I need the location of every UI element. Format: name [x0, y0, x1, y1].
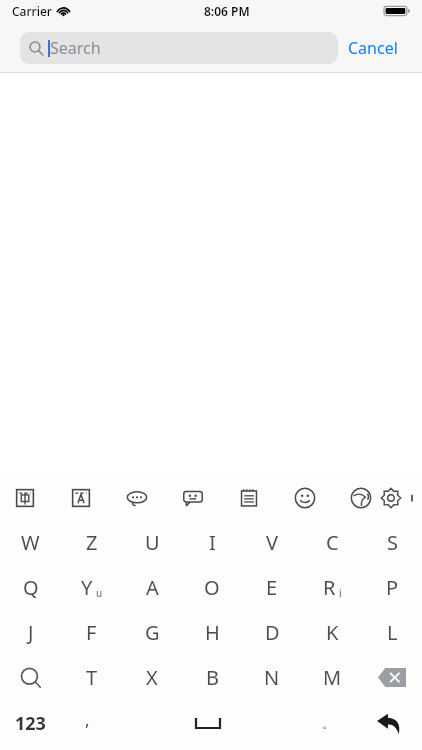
button[interactable]: D	[242, 610, 302, 655]
button[interactable]: Q	[0, 565, 61, 610]
staticText: S	[387, 529, 398, 556]
button[interactable]: Emoji	[290, 483, 320, 513]
button[interactable]: K	[302, 610, 362, 655]
staticText: J	[28, 619, 34, 646]
button[interactable]: X	[122, 655, 182, 700]
staticText: F	[86, 619, 97, 646]
button[interactable]: P	[362, 565, 422, 610]
button[interactable]: S	[362, 520, 422, 565]
staticText: 8:06 PM	[204, 3, 250, 19]
staticText: R	[323, 574, 336, 601]
staticText: Y	[81, 574, 93, 601]
staticText: X	[146, 664, 158, 691]
button[interactable]: Cancel	[338, 31, 408, 65]
staticText: Cancel	[348, 37, 398, 59]
staticText: Search	[50, 37, 101, 59]
staticText: 。	[322, 715, 335, 731]
staticText: N	[264, 664, 280, 691]
staticText: T	[86, 664, 98, 691]
staticText: P	[386, 574, 399, 601]
staticText: L	[387, 619, 398, 646]
staticText: I	[209, 529, 216, 556]
button[interactable]: C	[302, 520, 362, 565]
staticText: D	[265, 619, 280, 646]
button[interactable]: W	[0, 520, 61, 565]
staticText: V	[266, 529, 278, 556]
staticText: G	[145, 619, 160, 646]
button[interactable]: Emoticons	[178, 483, 208, 513]
button[interactable]: L	[362, 610, 422, 655]
button[interactable]: J	[0, 610, 61, 655]
button[interactable]: Space	[115, 700, 301, 746]
button[interactable]: Settings	[376, 483, 406, 513]
button[interactable]: E	[242, 565, 302, 610]
button[interactable]: Chinese input	[10, 483, 40, 513]
button[interactable]: V	[242, 520, 302, 565]
staticText: i	[339, 586, 342, 600]
button[interactable]: Notes	[234, 483, 264, 513]
button[interactable]: Globe	[346, 483, 376, 513]
button[interactable]: B	[182, 655, 242, 700]
button[interactable]: Search	[20, 32, 338, 64]
staticText: U	[145, 529, 160, 556]
staticText: K	[326, 619, 339, 646]
button[interactable]: O	[182, 565, 242, 610]
staticText: A	[146, 574, 159, 601]
button[interactable]: Phrases	[122, 483, 152, 513]
button[interactable]: T	[61, 655, 122, 700]
staticText: H	[205, 619, 220, 646]
button[interactable]: H	[182, 610, 242, 655]
button[interactable]: ,	[60, 700, 115, 746]
button[interactable]: M	[302, 655, 362, 700]
staticText: B	[206, 664, 219, 691]
staticText: ,	[85, 708, 90, 731]
staticText: Q	[23, 574, 39, 601]
button[interactable]: 123	[0, 700, 60, 746]
staticText: u	[96, 586, 103, 600]
button[interactable]: Y	[61, 565, 122, 610]
button[interactable]: Search	[0, 655, 61, 700]
button[interactable]: U	[122, 520, 182, 565]
button[interactable]: Return	[356, 700, 422, 746]
staticText: O	[204, 574, 220, 601]
staticText: Z	[86, 529, 98, 556]
button[interactable]: R	[302, 565, 362, 610]
button[interactable]: N	[242, 655, 302, 700]
staticText: C	[326, 529, 339, 556]
staticText: E	[266, 574, 278, 601]
button[interactable]: A	[122, 565, 182, 610]
button[interactable]: I	[182, 520, 242, 565]
button[interactable]: F	[61, 610, 122, 655]
button[interactable]: English input	[66, 483, 96, 513]
button[interactable]: Z	[61, 520, 122, 565]
button[interactable]: Delete	[362, 655, 422, 700]
button[interactable]: 。	[301, 700, 356, 746]
staticText: 123	[15, 711, 46, 736]
button[interactable]: G	[122, 610, 182, 655]
staticText: W	[21, 529, 40, 556]
staticText: M	[323, 664, 342, 691]
staticText: Carrier	[12, 3, 52, 19]
